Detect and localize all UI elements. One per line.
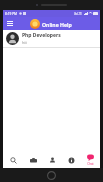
button[interactable]: Jobs — [23, 152, 43, 168]
button[interactable]: Open navigation menu — [3, 17, 16, 30]
staticText: VoLTE — [74, 12, 82, 16]
staticText: Chat — [87, 162, 94, 166]
staticText: 8:19 PM — [5, 12, 18, 16]
button[interactable]: Info — [62, 152, 81, 168]
button[interactable]: Chat — [81, 152, 100, 168]
button[interactable]: Search — [3, 152, 23, 168]
button[interactable]: Profile — [43, 152, 62, 168]
button[interactable]: Online Help — [30, 19, 72, 29]
staticText: Php Developers — [22, 32, 61, 39]
staticText: Online Help — [42, 21, 72, 28]
button[interactable]: Php Developers — [3, 30, 100, 47]
staticText: hiii — [22, 40, 28, 45]
